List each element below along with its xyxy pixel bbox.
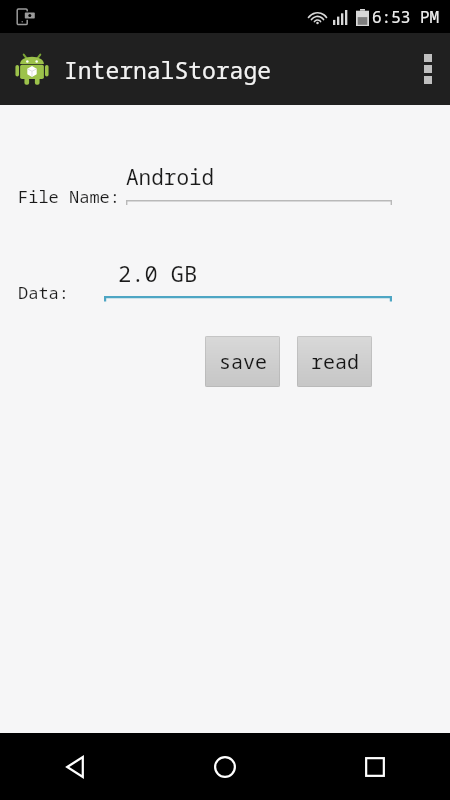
button[interactable]: save xyxy=(205,336,280,387)
staticText: read xyxy=(311,348,359,375)
button[interactable]: read xyxy=(297,336,372,387)
staticText: save xyxy=(219,348,267,375)
staticText: File Name: xyxy=(18,185,120,208)
button[interactable]: More options xyxy=(406,33,450,105)
staticText: InternalStorage xyxy=(64,54,272,85)
button[interactable]: Recent apps xyxy=(300,733,450,800)
button[interactable]: Back xyxy=(0,733,150,800)
staticText: Data: xyxy=(18,281,69,304)
button[interactable]: Home xyxy=(150,733,300,800)
button[interactable]: 2.0 GB xyxy=(104,258,392,304)
button[interactable]: Android xyxy=(126,163,392,208)
staticText: 2.0 GB xyxy=(118,258,198,288)
staticText: Android xyxy=(126,163,215,192)
staticText: 6:53 PM xyxy=(372,6,440,28)
